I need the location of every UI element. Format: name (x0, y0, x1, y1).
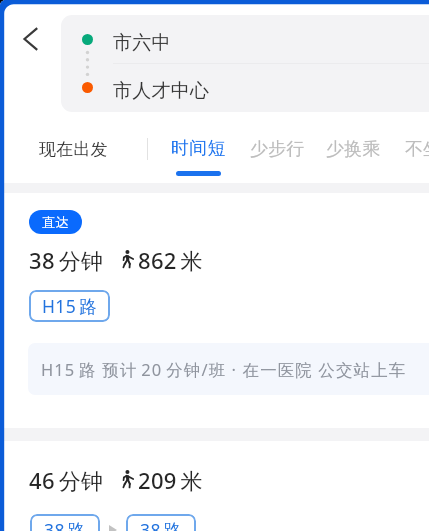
staticText: 不坐地铁 (405, 138, 429, 161)
button[interactable]: 46 分钟 (0, 441, 429, 531)
button[interactable]: 市六中 (61, 15, 429, 112)
staticText: 时间短 (171, 137, 226, 160)
button[interactable]: 少换乘 (326, 138, 381, 161)
staticText: 少步行 (250, 138, 305, 161)
staticText: 现在出发 (39, 139, 108, 160)
button[interactable]: 时间短 (171, 137, 226, 176)
staticText: 38 分钟 (29, 245, 104, 275)
button[interactable]: 直达 (0, 193, 429, 428)
button[interactable]: 38 路 (126, 514, 196, 531)
button[interactable]: H15 路 (29, 290, 110, 322)
staticText: 少换乘 (326, 138, 381, 161)
staticText: 市人才中心 (113, 79, 209, 103)
staticText: H15 路 预计 20 分钟/班 · 在一医院 公交站上车 (41, 358, 407, 381)
button[interactable]: 不坐地铁 (405, 138, 429, 161)
staticText: 市六中 (113, 31, 171, 55)
button[interactable]: 现在出发 (39, 139, 108, 160)
button[interactable]: 38 路 (30, 514, 100, 531)
staticText: 862 米 (138, 245, 203, 275)
staticText: 209 米 (138, 465, 203, 495)
staticText: 38 路 (44, 518, 87, 531)
staticText: 46 分钟 (29, 465, 104, 495)
staticText: 38 路 (140, 518, 183, 531)
staticText: H15 路 (42, 294, 98, 318)
button[interactable]: Back (9, 18, 51, 60)
button[interactable]: 少步行 (250, 138, 305, 161)
staticText: 直达 (42, 214, 69, 230)
